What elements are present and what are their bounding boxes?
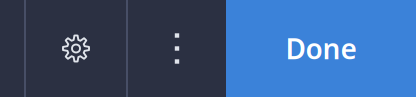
staticText: Done <box>285 30 356 67</box>
button[interactable]: Settings <box>26 0 126 97</box>
button[interactable]: Done <box>226 0 416 97</box>
button[interactable]: More options <box>128 0 226 97</box>
